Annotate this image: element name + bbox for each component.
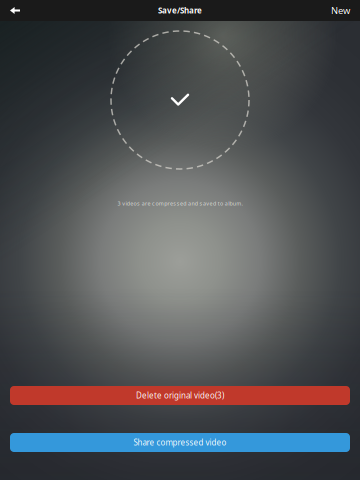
- button[interactable]: New: [310, 0, 350, 21]
- staticText: 3 videos are compressed and saved to alb…: [117, 200, 242, 207]
- staticText: Share compressed video: [133, 437, 226, 448]
- button[interactable]: Back: [10, 0, 50, 21]
- staticText: Delete original video(3): [136, 390, 224, 401]
- staticText: Save/Share: [158, 5, 202, 16]
- button[interactable]: Share compressed video: [10, 433, 350, 452]
- staticText: New: [331, 4, 350, 17]
- button[interactable]: Delete original video(3): [10, 386, 350, 405]
